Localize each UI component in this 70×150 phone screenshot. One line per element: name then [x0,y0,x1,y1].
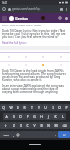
button[interactable]: Z [10,122,17,129]
staticText: Dusk Till Dawn is the lead single from Z… [2,69,68,82]
button[interactable]: X [17,122,24,129]
staticText: 9:41 [2,1,8,5]
button[interactable]: Account [64,16,68,20]
staticText: T [31,105,33,110]
button[interactable]: Cell [52,53,70,61]
staticText: E [17,105,19,110]
staticText: X [20,123,22,128]
staticText: M [54,123,58,128]
button[interactable]: B [38,122,45,129]
staticText: N [47,123,50,128]
button[interactable]: Y [35,104,42,111]
staticText: genius.com/search?q= [12,7,41,11]
staticText: L [62,114,64,119]
button[interactable]: ⇧ [0,122,10,129]
staticText: Genius [15,16,28,21]
button[interactable]: Cell [0,53,17,61]
staticText: B [40,123,43,128]
staticText: I [52,105,54,110]
button[interactable]: . [53,131,58,138]
staticText: V [33,123,36,128]
button[interactable]: P [63,104,70,111]
button[interactable]: Cell [17,62,34,68]
staticText: C [26,123,29,128]
button[interactable]: Cell [34,62,52,68]
button[interactable]: L [59,113,66,120]
staticText: O [58,105,61,110]
button[interactable]: ?123 [0,131,11,138]
button[interactable]: N [45,122,52,129]
staticText: , [13,133,14,137]
button[interactable]: ⌫ [59,122,70,129]
button[interactable]: E [14,104,21,111]
button[interactable]: ☺ [15,131,20,138]
button[interactable]: I [49,104,56,111]
button[interactable]: genius.com/search?q= [7,5,58,13]
staticText: ZAYN – Dusk Till Dawn Lyrics | Genius [2,24,42,27]
button[interactable]: W [7,104,14,111]
button[interactable]: G [31,113,38,120]
staticText: F [27,114,29,119]
staticText: Read the full lyrics › [2,41,28,45]
button[interactable]: R [21,104,28,111]
button[interactable]: O [56,104,63,111]
staticText: Z [13,123,15,128]
staticText: W [9,105,13,110]
button[interactable]: D [17,113,24,120]
button[interactable]: Q [0,104,7,111]
button[interactable]: ↵ [58,131,70,138]
staticText: . [55,133,56,137]
staticText: Dusk Till Dawn Lyrics: Not tryna be indi… [2,29,68,39]
staticText: R [23,105,26,110]
staticText: 8 [61,8,63,11]
button[interactable]: S [10,113,17,120]
staticText: D [19,114,22,119]
button[interactable]: M [52,122,59,129]
staticText: Q [2,105,5,110]
button[interactable]: C [24,122,31,129]
button[interactable]: Cell [17,53,34,61]
staticText: Y [38,105,40,110]
staticText: ⇧ [4,124,7,128]
staticText: P [65,105,68,110]
button[interactable]: Cell [34,53,52,61]
button[interactable]: H [38,113,45,120]
button[interactable]: V [31,122,38,129]
staticText: G [33,114,36,119]
staticText: H [40,114,43,119]
staticText: A [5,114,8,119]
staticText: J [48,114,49,119]
staticText: ↵ [63,133,66,136]
button[interactable]: U [42,104,49,111]
staticText: U [44,105,47,110]
staticText: ⌫ [62,124,67,127]
button[interactable]: Reload page [1,6,7,12]
button[interactable]: A [3,113,10,120]
button[interactable]: More options [64,7,69,12]
staticText: S [13,114,15,119]
button[interactable]: Cell [52,62,70,68]
button[interactable]: Tabs [58,6,64,12]
staticText: In an interview ZAYN explained the song … [2,84,68,94]
button[interactable]: J [45,113,52,120]
button[interactable]: K [52,113,59,120]
button[interactable]: Cell [0,62,17,68]
staticText: K [54,114,57,119]
button[interactable]: T [28,104,35,111]
staticText: ?123 [3,133,9,136]
button[interactable]: F [24,113,31,120]
button[interactable]: Search [58,16,62,20]
staticText: ☺ [16,133,20,136]
button[interactable]: , [11,131,15,138]
